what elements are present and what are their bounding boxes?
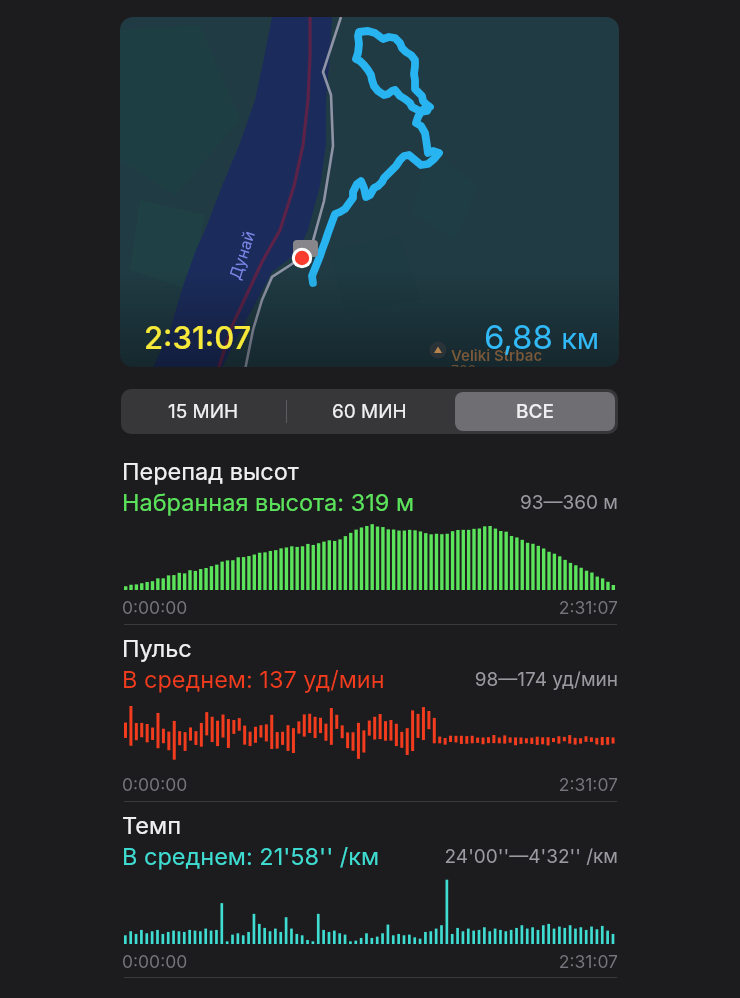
staticText: 2:31:07: [144, 319, 252, 357]
staticText: Veliki Strbac: [451, 346, 543, 364]
staticText: В среднем: 137 уд/мин: [122, 665, 385, 693]
staticText: Перепад высот: [122, 457, 299, 485]
staticText: 15 МИН: [168, 400, 239, 423]
staticText: 60 МИН: [332, 400, 407, 423]
button[interactable]: 15 МИН: [124, 392, 283, 431]
staticText: км: [553, 321, 600, 356]
staticText: 24'00''—4'32'' /км: [324, 845, 618, 868]
staticText: 93—360 м: [324, 491, 618, 514]
button[interactable]: Route map: [120, 17, 619, 367]
staticText: Пульс: [122, 634, 192, 662]
button[interactable]: ВСЕ: [455, 392, 615, 431]
staticText: 0:00:00: [122, 597, 188, 618]
staticText: 2:31:07: [324, 951, 618, 972]
staticText: 6,88: [484, 317, 553, 357]
staticText: Набранная высота: 319 м: [122, 488, 414, 516]
staticText: 98—174 уд/мин: [324, 668, 618, 691]
staticText: 768 м: [451, 362, 491, 367]
staticText: В среднем: 21'58'' /км: [122, 842, 380, 870]
staticText: 0:00:00: [122, 774, 188, 795]
staticText: 2:31:07: [324, 774, 618, 795]
staticText: Темп: [122, 811, 181, 839]
staticText: 0:00:00: [122, 951, 188, 972]
staticText: ВСЕ: [516, 400, 554, 423]
staticText: 2:31:07: [324, 597, 618, 618]
staticText: Дунай: [225, 227, 258, 282]
button[interactable]: 60 МИН: [289, 392, 449, 431]
